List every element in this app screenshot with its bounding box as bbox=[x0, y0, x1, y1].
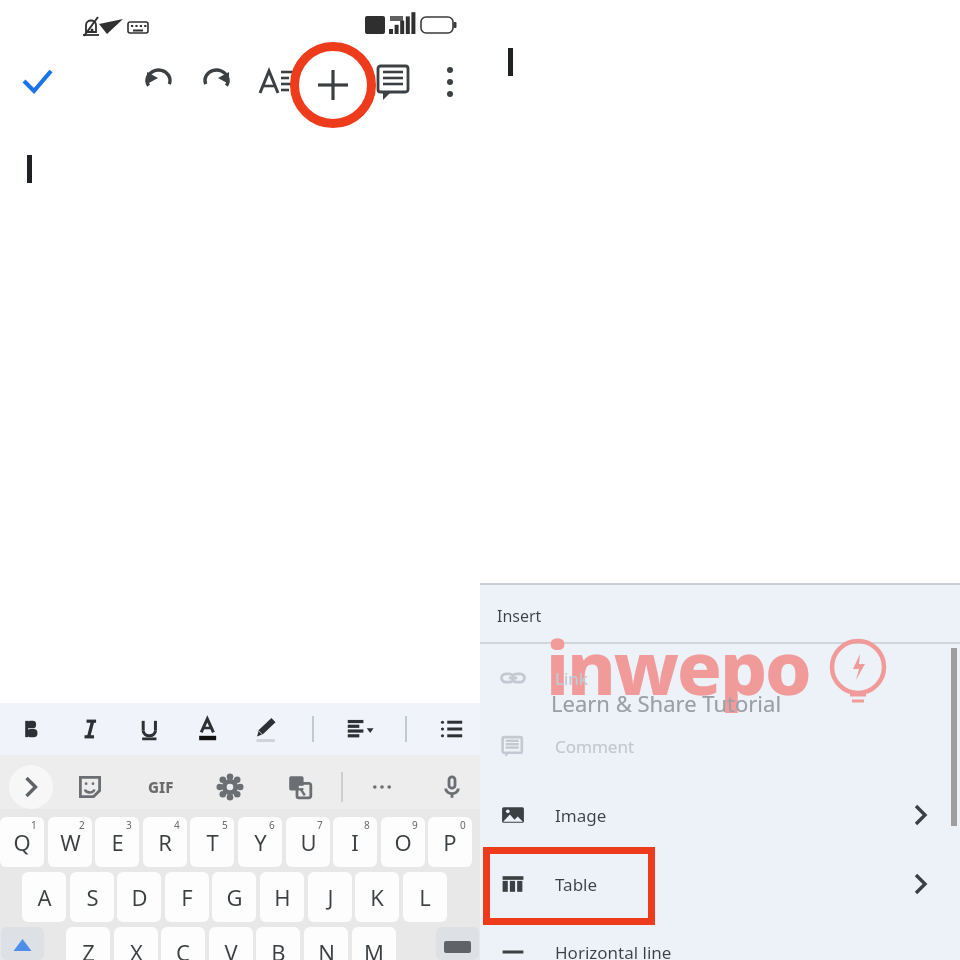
staticText: I bbox=[351, 827, 359, 857]
staticText: Q bbox=[13, 827, 31, 857]
staticText: Learn & Share Tutorial bbox=[551, 688, 782, 718]
button[interactable]: E bbox=[95, 817, 139, 867]
button[interactable]: P bbox=[428, 817, 472, 867]
button[interactable]: R bbox=[143, 817, 187, 867]
staticText: GIF bbox=[148, 777, 174, 797]
button[interactable]: List bbox=[423, 703, 480, 755]
button[interactable]: More bbox=[360, 765, 404, 809]
button[interactable]: V bbox=[209, 927, 253, 960]
staticText: inwepo bbox=[546, 616, 810, 717]
button[interactable]: Link bbox=[480, 646, 960, 708]
staticText: L bbox=[419, 882, 431, 912]
staticText: V bbox=[224, 937, 238, 960]
staticText: Image bbox=[555, 804, 607, 827]
button[interactable]: Horizontal line bbox=[480, 920, 960, 960]
staticText: 0 bbox=[460, 818, 466, 832]
staticText: P bbox=[443, 827, 457, 857]
button[interactable]: Align bbox=[331, 703, 389, 755]
button[interactable]: Underline bbox=[121, 703, 179, 755]
button[interactable]: X bbox=[114, 927, 158, 960]
button[interactable]: Back bbox=[9, 765, 53, 809]
staticText: Link bbox=[555, 667, 588, 690]
button[interactable]: Translate bbox=[278, 765, 322, 809]
button[interactable]: U bbox=[286, 817, 330, 867]
button[interactable]: GIF bbox=[137, 765, 185, 809]
staticText: O bbox=[394, 827, 412, 857]
button[interactable]: D bbox=[117, 872, 161, 922]
staticText: T bbox=[206, 827, 219, 857]
button[interactable]: J bbox=[308, 872, 352, 922]
button[interactable]: Bold bbox=[0, 703, 63, 755]
staticText: Table bbox=[555, 873, 598, 896]
button[interactable]: N bbox=[304, 927, 348, 960]
staticText: U bbox=[300, 827, 317, 857]
button[interactable]: B bbox=[256, 927, 300, 960]
staticText: J bbox=[327, 882, 334, 912]
button[interactable]: Highlight bbox=[237, 703, 295, 755]
button[interactable]: L bbox=[403, 872, 447, 922]
staticText: X bbox=[130, 937, 143, 960]
staticText: E bbox=[111, 827, 124, 857]
staticText: B bbox=[271, 937, 286, 960]
staticText: Z bbox=[82, 937, 95, 960]
button[interactable]: S bbox=[70, 872, 114, 922]
staticText: S bbox=[86, 882, 99, 912]
button[interactable]: Y bbox=[238, 817, 282, 867]
button[interactable]: Q bbox=[0, 817, 44, 867]
staticText: 9 bbox=[412, 818, 418, 832]
button[interactable]: Z bbox=[66, 927, 110, 960]
staticText: D bbox=[131, 882, 148, 912]
button[interactable]: I bbox=[333, 817, 377, 867]
button[interactable]: Settings bbox=[208, 765, 252, 809]
button[interactable]: Text color bbox=[179, 703, 237, 755]
staticText: A bbox=[37, 882, 52, 912]
button[interactable]: Table bbox=[480, 852, 960, 914]
button[interactable]: Italic bbox=[63, 703, 121, 755]
button[interactable]: Shift bbox=[1, 927, 44, 960]
button[interactable]: Comment bbox=[480, 714, 960, 776]
button[interactable]: M bbox=[352, 927, 396, 960]
staticText: C bbox=[176, 937, 190, 960]
button[interactable]: K bbox=[355, 872, 399, 922]
staticText: 3 bbox=[126, 818, 132, 832]
button[interactable]: Image bbox=[480, 783, 960, 845]
button[interactable]: F bbox=[165, 872, 209, 922]
button[interactable]: A bbox=[22, 872, 66, 922]
button[interactable]: Voice input bbox=[430, 765, 474, 809]
button[interactable]: Stickers bbox=[68, 765, 112, 809]
staticText: H bbox=[274, 882, 291, 912]
button[interactable]: O bbox=[381, 817, 425, 867]
staticText: Horizontal line bbox=[555, 941, 672, 960]
staticText: R bbox=[158, 827, 172, 857]
staticText: Insert bbox=[497, 605, 542, 627]
staticText: 1 bbox=[31, 818, 37, 832]
button[interactable]: Backspace bbox=[436, 927, 479, 960]
staticText: 7 bbox=[317, 818, 323, 832]
button[interactable]: H bbox=[260, 872, 304, 922]
staticText: 8 bbox=[364, 818, 370, 832]
button[interactable]: T bbox=[190, 817, 234, 867]
staticText: G bbox=[226, 882, 243, 912]
button[interactable]: W bbox=[48, 817, 92, 867]
staticText: 2 bbox=[79, 818, 85, 832]
staticText: M bbox=[364, 937, 384, 960]
button[interactable]: G bbox=[212, 872, 256, 922]
staticText: W bbox=[60, 827, 81, 857]
staticText: F bbox=[181, 882, 193, 912]
staticText: 6 bbox=[269, 818, 275, 832]
staticText: 4 bbox=[174, 818, 180, 832]
staticText: K bbox=[370, 882, 384, 912]
staticText: Y bbox=[254, 827, 267, 857]
staticText: 5 bbox=[222, 818, 228, 832]
staticText: N bbox=[318, 937, 335, 960]
button[interactable]: C bbox=[161, 927, 205, 960]
staticText: Comment bbox=[555, 735, 635, 758]
